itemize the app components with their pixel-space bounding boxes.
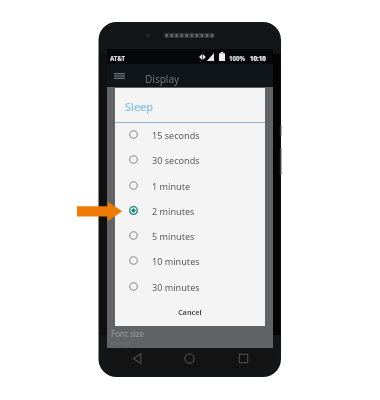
staticText: 1 minute <box>152 180 191 192</box>
button[interactable]: Recent apps <box>232 348 254 369</box>
staticText: Cancel <box>178 307 202 317</box>
staticText: 30 seconds <box>152 154 200 166</box>
button[interactable]: 10 minutes <box>115 248 265 273</box>
staticText: AT&T <box>110 54 126 62</box>
staticText: 2 minutes <box>152 205 195 217</box>
staticText: Font size <box>111 328 145 339</box>
button[interactable]: 30 seconds <box>115 147 265 172</box>
button[interactable]: Back <box>126 348 148 369</box>
staticText: 30 minutes <box>152 281 200 293</box>
button[interactable]: 15 seconds <box>115 122 265 147</box>
staticText: Normal <box>111 339 131 346</box>
staticText: 100% <box>229 54 246 62</box>
button[interactable]: 5 minutes <box>115 223 265 248</box>
staticText: 15 seconds <box>152 129 200 141</box>
button[interactable]: Cancel <box>115 302 265 322</box>
staticText: Display <box>145 72 180 86</box>
button[interactable]: Open navigation menu <box>111 67 128 84</box>
button[interactable]: 2 minutes <box>115 198 265 223</box>
staticText: 10 minutes <box>152 255 200 267</box>
staticText: Sleep <box>125 99 154 114</box>
button[interactable]: Home <box>178 348 200 369</box>
button[interactable]: 30 minutes <box>115 274 265 299</box>
staticText: 5 minutes <box>152 230 195 242</box>
button[interactable]: 1 minute <box>115 173 265 198</box>
staticText: 10:10 <box>250 54 266 62</box>
